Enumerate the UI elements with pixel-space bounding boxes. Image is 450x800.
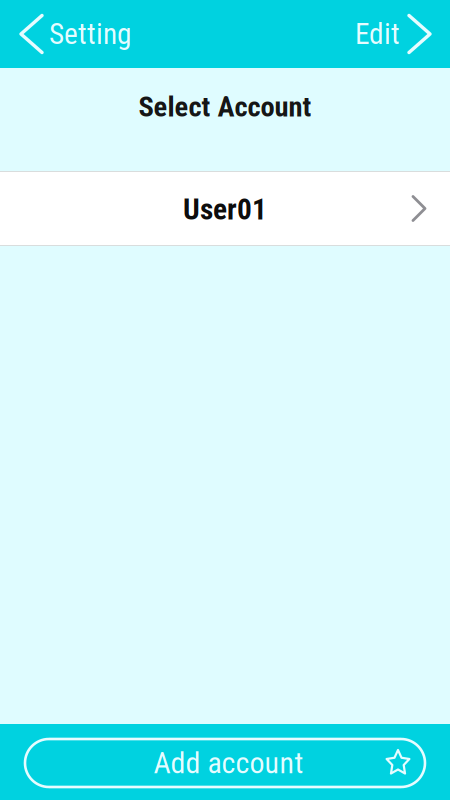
button[interactable]: Add account	[0, 724, 450, 800]
button[interactable]: Setting	[0, 0, 141, 68]
staticText: User01	[183, 192, 267, 227]
staticText: Edit	[355, 17, 400, 51]
staticText: Setting	[49, 17, 131, 51]
button[interactable]: User01	[0, 172, 450, 245]
staticText: Add account	[153, 745, 303, 781]
staticText: Select Account	[138, 90, 311, 123]
button[interactable]: Edit	[345, 0, 450, 68]
